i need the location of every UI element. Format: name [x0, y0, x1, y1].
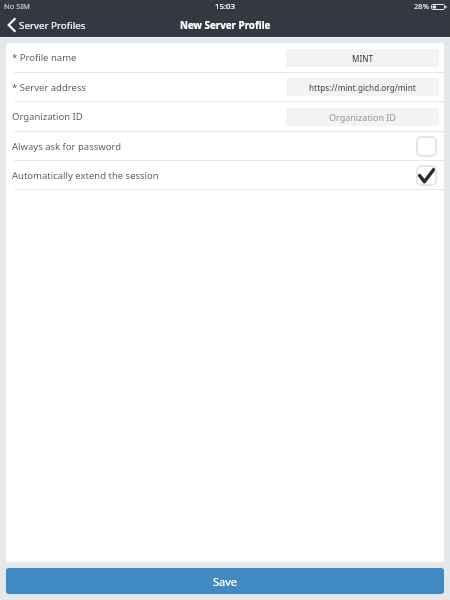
button[interactable]: Save — [6, 568, 444, 594]
staticText: No SIM — [4, 1, 30, 11]
button[interactable]: Back to Server Profiles — [0, 17, 92, 34]
staticText: Server Profiles — [19, 19, 86, 32]
button[interactable]: * Profile name — [6, 43, 444, 72]
button[interactable]: Organization ID — [6, 102, 444, 131]
staticText: Automatically extend the session — [12, 169, 159, 182]
button[interactable]: Automatically extend the session, checke… — [416, 165, 437, 186]
button[interactable]: Always ask for password — [6, 132, 444, 160]
button[interactable]: * Server address — [6, 73, 444, 101]
staticText: https://mint.gichd.org/mint — [309, 82, 416, 93]
staticText: 15:03 — [215, 1, 235, 12]
button[interactable]: Always ask for password, unchecked — [416, 136, 437, 157]
staticText: New Server Profile — [180, 19, 271, 32]
staticText: Save — [213, 574, 238, 589]
staticText: * Profile name — [12, 51, 77, 64]
staticText: MINT — [352, 53, 374, 64]
staticText: Organization ID — [329, 111, 396, 123]
staticText: Organization ID — [12, 110, 83, 123]
button[interactable]: Automatically extend the session — [6, 161, 444, 189]
staticText: 28% — [414, 1, 429, 11]
staticText: Always ask for password — [12, 140, 122, 153]
staticText: * Server address — [12, 81, 86, 94]
